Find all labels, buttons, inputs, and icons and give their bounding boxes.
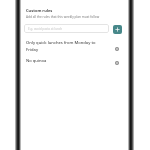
staticText: Custom rules xyxy=(26,8,53,13)
staticText: Add all the rules that this weekly plan … xyxy=(26,15,100,19)
button[interactable]: Remove rule xyxy=(114,60,120,66)
staticText: Only quick lunches from Monday to Friday xyxy=(26,40,98,53)
button[interactable] xyxy=(21,56,128,65)
button[interactable]: Remove rule xyxy=(114,46,120,52)
staticText: No quinoa xyxy=(26,58,98,64)
button[interactable] xyxy=(21,39,128,48)
button[interactable]: E.g. avoid pasta at lunch xyxy=(24,24,109,33)
button[interactable]: Add rule xyxy=(113,25,122,34)
staticText: E.g. avoid pasta at lunch xyxy=(28,27,63,31)
